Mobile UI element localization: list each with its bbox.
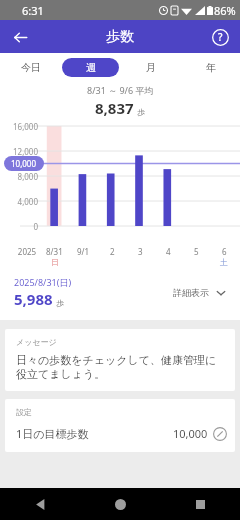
staticText: 16,000	[0, 121, 38, 132]
staticText: 6:31	[22, 3, 44, 18]
staticText: 歩	[56, 298, 64, 308]
staticText: 8/31 ～ 9/6 平均	[87, 84, 154, 96]
staticText: 詳細表示	[173, 287, 209, 298]
staticText: 週	[86, 61, 96, 74]
staticText: 8,837	[95, 98, 134, 118]
staticText: 年	[206, 61, 216, 74]
staticText: 2025	[14, 246, 40, 257]
staticText: 設定	[16, 407, 32, 417]
staticText: 0	[0, 221, 38, 232]
staticText: 1日の目標歩数	[16, 426, 89, 441]
other: Edit goal	[213, 427, 227, 441]
staticText: 歩	[137, 107, 145, 117]
staticText: 今日	[21, 61, 41, 74]
staticText: 2025/8/31(日)	[14, 276, 72, 288]
staticText: 5,988	[14, 289, 53, 309]
button[interactable]: Help	[207, 24, 233, 50]
staticText: 10,000	[11, 158, 37, 169]
staticText: 2	[110, 246, 115, 257]
staticText: 3	[138, 246, 143, 257]
button[interactable]: Home	[80, 488, 160, 520]
staticText: 4,000	[0, 196, 38, 207]
staticText: 4	[166, 246, 171, 257]
staticText: 10,000	[173, 426, 208, 441]
staticText: 土	[220, 257, 228, 267]
staticText: 86%	[214, 3, 236, 18]
button[interactable]: 1日の目標歩数	[16, 426, 227, 441]
button[interactable]: 年	[182, 58, 239, 77]
staticText: 月	[146, 61, 156, 74]
staticText: 8,000	[0, 171, 38, 182]
staticText: 8/31	[46, 246, 63, 257]
button[interactable]: 今日	[2, 58, 59, 77]
staticText: ?	[218, 30, 223, 44]
button[interactable]: 週	[62, 58, 119, 77]
button[interactable]: Back	[0, 488, 80, 520]
button[interactable]: Recents	[160, 488, 240, 520]
staticText: メッセージ	[16, 337, 57, 347]
staticText: 歩数	[106, 28, 134, 46]
staticText: 日	[51, 257, 59, 267]
button[interactable]: Back	[6, 23, 34, 51]
staticText: 12,000	[0, 146, 38, 157]
button[interactable]: 月	[122, 58, 179, 77]
staticText: 6	[222, 246, 227, 257]
staticText: 9/1	[77, 246, 90, 257]
button[interactable]: 詳細表示	[169, 283, 230, 302]
staticText: 5	[194, 246, 199, 257]
staticText: 日々の歩数をチェックして、健康管理に 役立てましょう。	[16, 353, 217, 381]
button[interactable]: メッセージ	[5, 329, 235, 391]
